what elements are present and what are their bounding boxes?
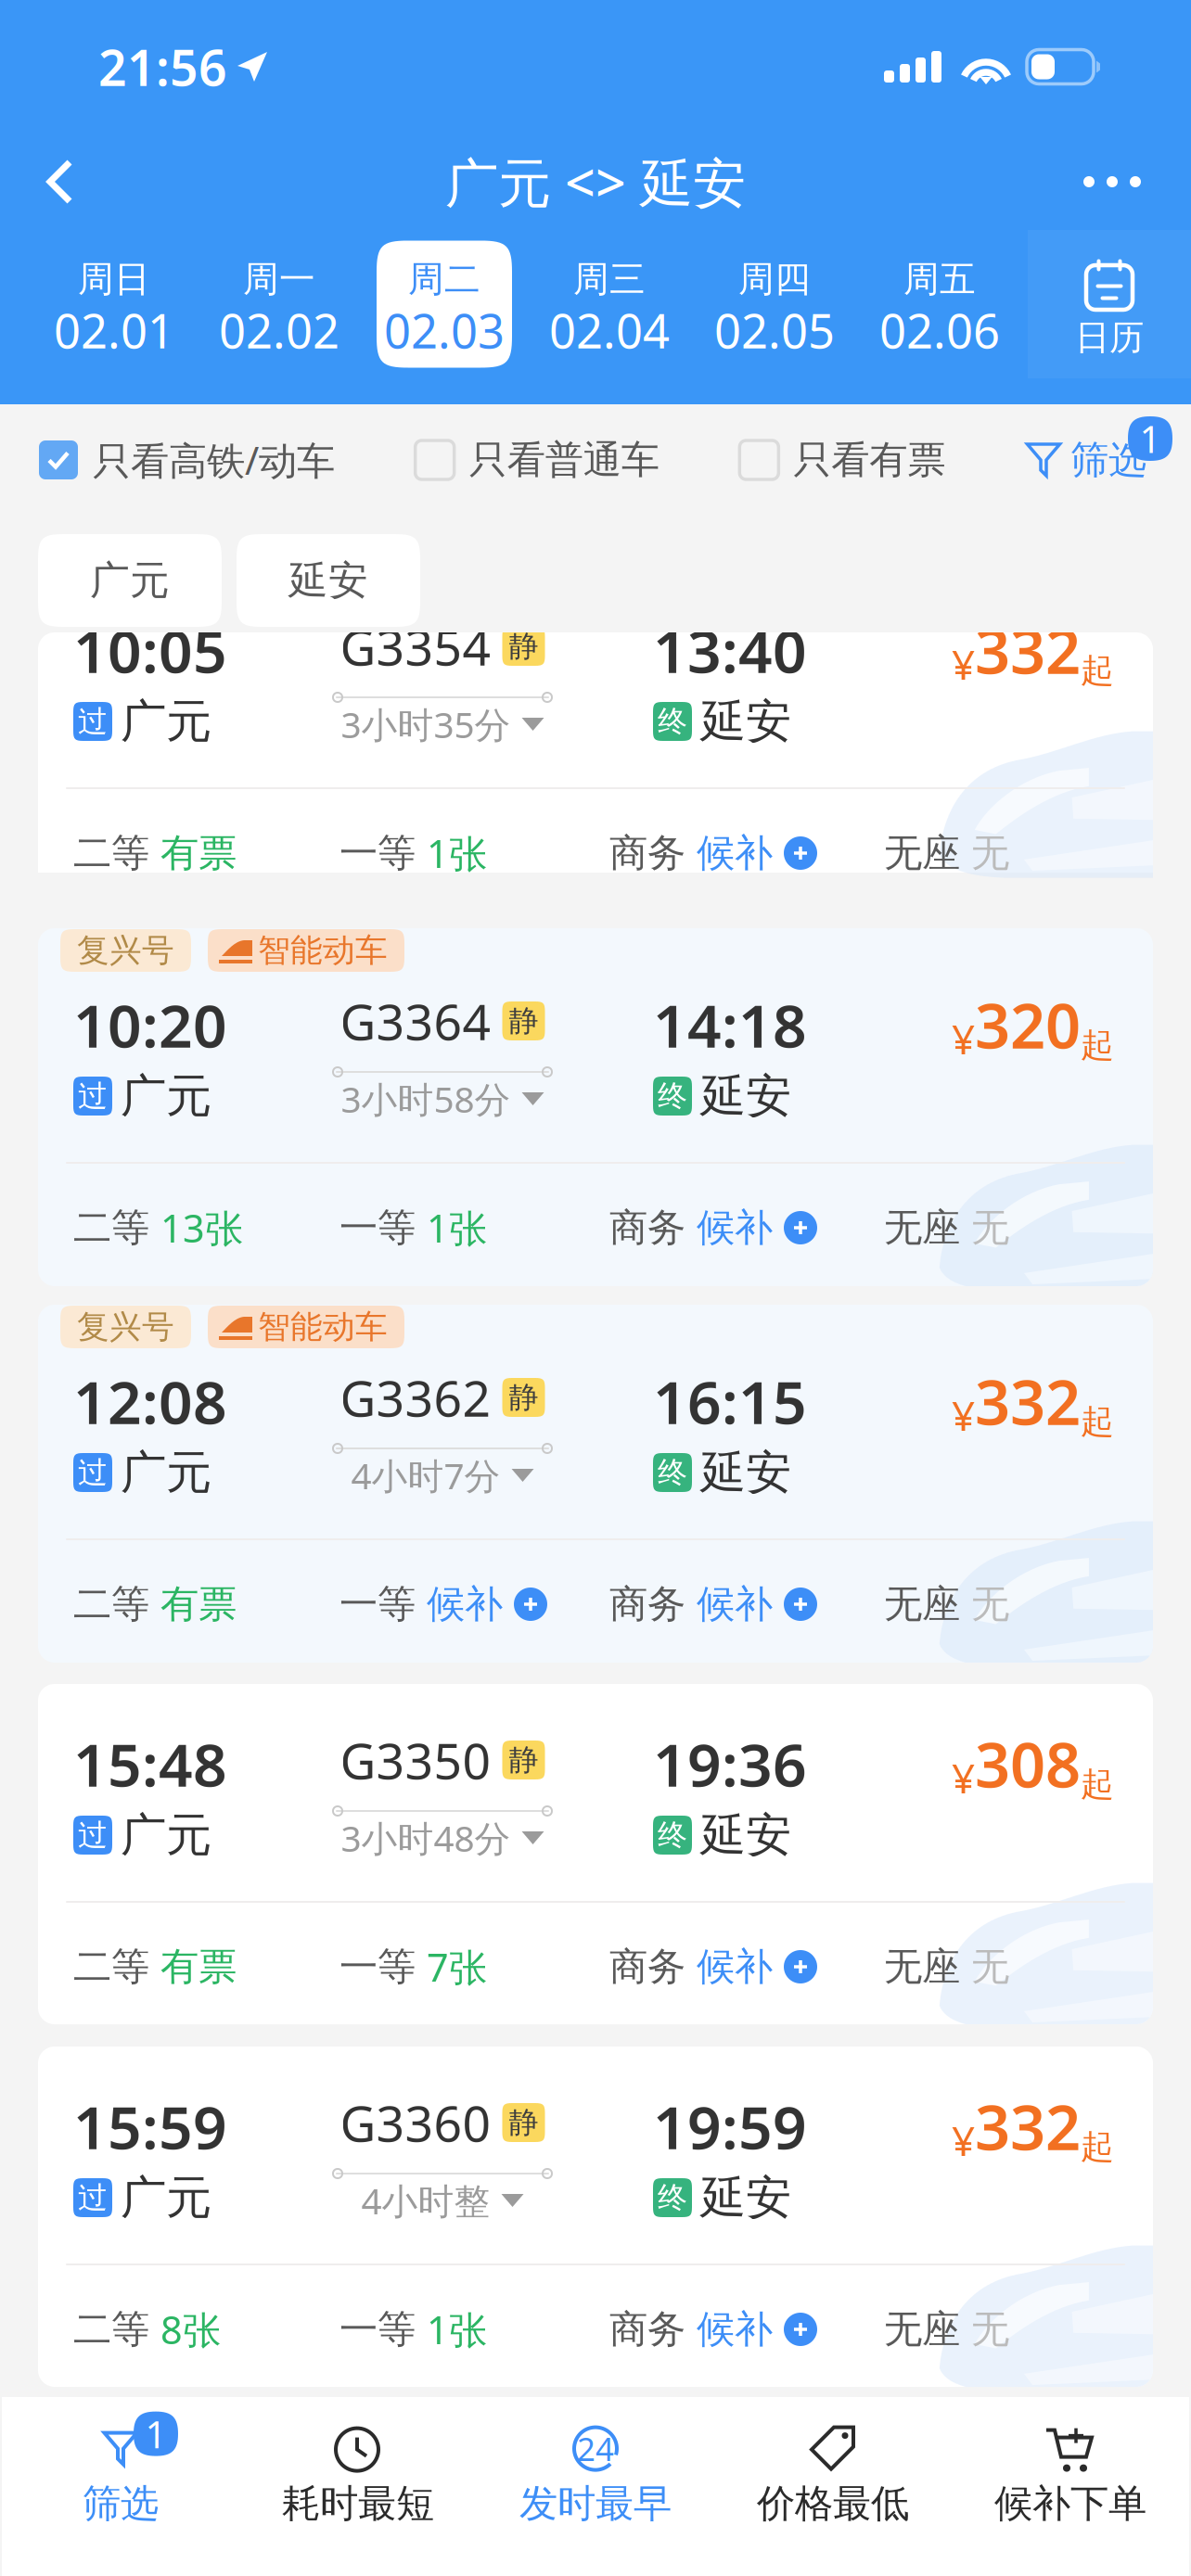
staticText: 复兴号	[77, 1307, 174, 1347]
button[interactable]: 复兴号	[0, 928, 1191, 1286]
staticText: 02.03	[384, 299, 505, 361]
staticText: 二等	[73, 2306, 149, 2353]
staticText: 02.02	[219, 299, 339, 361]
staticText: 无	[971, 1943, 1009, 1990]
staticText: 无	[971, 2306, 1009, 2353]
staticText: 1	[145, 2409, 166, 2458]
staticText: 15:48	[73, 1724, 227, 1803]
staticText: 332	[975, 2085, 1081, 2167]
staticText: 起	[1081, 1401, 1114, 1442]
staticText: 候补下单	[994, 2480, 1146, 2527]
staticText: 无座	[884, 1581, 960, 1628]
staticText: 智能动车	[258, 931, 388, 970]
button[interactable]: 筛选	[1026, 409, 1146, 511]
staticText: 无座	[884, 1204, 960, 1251]
staticText: 无座	[884, 830, 960, 877]
staticText: 商务	[609, 2306, 685, 2353]
staticText: 商务	[609, 1204, 685, 1251]
staticText: 广元	[121, 1068, 211, 1124]
staticText: G3350	[340, 1727, 491, 1793]
staticText: 延安	[700, 693, 791, 750]
button[interactable]: 1	[2, 2410, 239, 2540]
staticText: 发时最早	[519, 2480, 672, 2527]
staticText: 商务	[609, 1581, 685, 1628]
staticText: 二等	[73, 1943, 149, 1990]
button[interactable]: 只看有票	[740, 409, 945, 511]
button[interactable]: 复兴号	[0, 1305, 1191, 1663]
button[interactable]: 耗时最短	[239, 2410, 477, 2540]
button[interactable]: 10:05	[0, 632, 1191, 906]
staticText: 19:36	[653, 1724, 807, 1803]
staticText: 只看高铁/动车	[93, 435, 335, 485]
staticText: 广元	[121, 1444, 211, 1501]
staticText: 4小时7分	[351, 1451, 500, 1499]
staticText: 商务	[609, 830, 685, 877]
staticText: 二等	[73, 1581, 149, 1628]
staticText: 静	[509, 1742, 538, 1778]
staticText: ¥	[952, 1388, 975, 1442]
staticText: 有票	[160, 1943, 237, 1990]
staticText: 无	[971, 830, 1009, 877]
staticText: 13:40	[653, 611, 807, 689]
button[interactable]: 日历	[1028, 230, 1191, 378]
staticText: 延安	[700, 2170, 791, 2226]
staticText: 14:18	[653, 985, 807, 1064]
button[interactable]: 候补下单	[952, 2410, 1189, 2540]
staticText: G3360	[340, 2090, 491, 2155]
button[interactable]: More	[1046, 134, 1191, 230]
staticText: 一等	[339, 1581, 416, 1628]
button[interactable]: 24	[477, 2410, 714, 2540]
staticText: 耗时最短	[282, 2480, 434, 2527]
staticText: 02.06	[879, 299, 1000, 361]
staticText: G3362	[340, 1365, 491, 1430]
staticText: 终	[658, 1454, 687, 1491]
staticText: 无	[971, 1581, 1009, 1628]
staticText: 无	[971, 1204, 1009, 1251]
staticText: 广元	[90, 556, 170, 605]
staticText: 3小时58分	[341, 1075, 511, 1123]
staticText: 价格最低	[757, 2480, 909, 2527]
staticText: ¥	[952, 1751, 975, 1805]
staticText: 二等	[73, 1204, 149, 1251]
staticText: 静	[509, 1003, 538, 1039]
staticText: 起	[1081, 1764, 1114, 1805]
staticText: 静	[509, 2104, 538, 2141]
staticText: 一等	[339, 1204, 416, 1251]
button[interactable]: 周四	[692, 230, 857, 378]
button[interactable]: 周日	[32, 230, 197, 378]
staticText: 周二	[408, 257, 480, 301]
button[interactable]: 周三	[527, 230, 692, 378]
staticText: 21:56	[98, 34, 227, 100]
staticText: 332	[975, 1360, 1081, 1442]
button[interactable]: 周一	[197, 230, 362, 378]
staticText: 一等	[339, 830, 416, 877]
staticText: 起	[1081, 2126, 1114, 2167]
button[interactable]: 15:59	[0, 2047, 1191, 2387]
staticText: 广元	[121, 693, 211, 750]
staticText: 02.04	[549, 299, 670, 361]
staticText: 终	[658, 1817, 687, 1853]
staticText: 12:08	[73, 1362, 227, 1441]
button[interactable]: 只看高铁/动车	[39, 409, 335, 511]
button[interactable]: 广元	[38, 534, 222, 627]
staticText: 筛选	[83, 2480, 159, 2527]
staticText: 候补	[697, 2306, 773, 2353]
button[interactable]: 只看普通车	[415, 409, 659, 511]
staticText: 周日	[78, 257, 150, 301]
button[interactable]: 15:48	[0, 1684, 1191, 2024]
staticText: 候补	[697, 1204, 773, 1251]
staticText: 13张	[160, 1202, 243, 1253]
staticText: 无座	[884, 1943, 960, 1990]
button[interactable]: 周五	[857, 230, 1022, 378]
button[interactable]: 延安	[237, 534, 420, 627]
staticText: 智能动车	[258, 1307, 388, 1347]
button[interactable]: Back	[0, 134, 110, 230]
staticText: 24	[577, 2427, 614, 2470]
staticText: 广元 <> 延安	[445, 146, 746, 217]
staticText: 候补	[697, 1581, 773, 1628]
button[interactable]: 周二	[362, 230, 527, 378]
staticText: 日历	[1075, 316, 1144, 359]
staticText: 只看普通车	[469, 436, 659, 483]
button[interactable]: 价格最低	[714, 2410, 952, 2540]
staticText: 过	[78, 2179, 108, 2216]
